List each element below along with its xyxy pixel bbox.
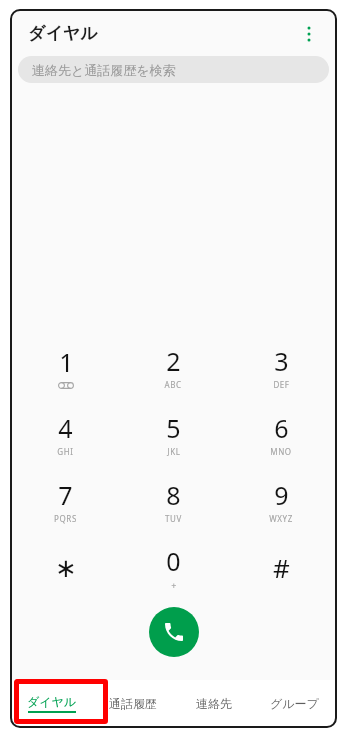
staticText: 1 bbox=[59, 345, 74, 379]
staticText: 2 bbox=[166, 344, 181, 378]
button[interactable]: 0 bbox=[119, 534, 227, 601]
button[interactable]: その他のオプション bbox=[291, 16, 327, 52]
staticText: ABC bbox=[164, 379, 182, 390]
button[interactable]: ∗ bbox=[12, 534, 119, 601]
staticText: 3 bbox=[274, 344, 289, 378]
button[interactable]: グループ bbox=[254, 680, 335, 726]
staticText: WXYZ bbox=[269, 513, 293, 524]
button[interactable]: 3 bbox=[227, 333, 335, 400]
staticText: 8 bbox=[166, 478, 181, 512]
button[interactable]: 5 bbox=[119, 400, 227, 467]
button[interactable]: 連絡先と通話履歴を検索 bbox=[18, 56, 329, 83]
button[interactable]: 連絡先 bbox=[173, 680, 254, 726]
button[interactable]: 1 bbox=[12, 333, 119, 400]
staticText: # bbox=[273, 550, 290, 585]
staticText: ダイヤル bbox=[27, 694, 77, 709]
button[interactable]: 発信 bbox=[149, 607, 199, 657]
button[interactable]: # bbox=[227, 534, 335, 601]
staticText: 通話履歴 bbox=[109, 696, 157, 711]
button[interactable]: ダイヤル bbox=[12, 680, 92, 726]
staticText: 4 bbox=[58, 411, 73, 445]
button[interactable]: 6 bbox=[227, 400, 335, 467]
staticText: ∗ bbox=[55, 553, 77, 583]
button[interactable]: 2 bbox=[119, 333, 227, 400]
button[interactable]: 4 bbox=[12, 400, 119, 467]
staticText: DEF bbox=[273, 379, 290, 390]
staticText: + bbox=[171, 579, 177, 591]
button[interactable]: 7 bbox=[12, 467, 119, 534]
button[interactable]: 8 bbox=[119, 467, 227, 534]
button[interactable]: 9 bbox=[227, 467, 335, 534]
staticText: 連絡先と通話履歴を検索 bbox=[32, 62, 176, 78]
button[interactable]: 通話履歴 bbox=[92, 680, 173, 726]
staticText: 連絡先 bbox=[196, 696, 232, 711]
staticText: ダイヤル bbox=[28, 23, 98, 44]
staticText: 9 bbox=[274, 478, 289, 512]
staticText: 0 bbox=[166, 544, 181, 578]
staticText: 5 bbox=[166, 411, 181, 445]
staticText: グループ bbox=[270, 696, 319, 711]
staticText: 6 bbox=[274, 411, 289, 445]
staticText: 7 bbox=[58, 478, 73, 512]
staticText: TUV bbox=[165, 513, 182, 524]
staticText: MNO bbox=[270, 446, 292, 457]
staticText: JKL bbox=[167, 446, 181, 457]
staticText: PQRS bbox=[54, 513, 77, 524]
staticText: GHI bbox=[57, 446, 74, 457]
